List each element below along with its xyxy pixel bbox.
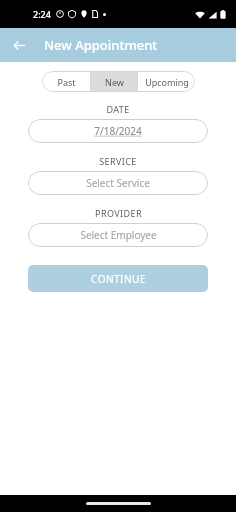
button[interactable]: New <box>91 71 137 92</box>
staticText: Upcoming <box>145 76 189 88</box>
staticText: 2:24 <box>33 8 51 20</box>
staticText: New <box>105 76 124 88</box>
button[interactable]: CONTINUE <box>28 265 208 292</box>
button[interactable]: Upcoming <box>138 71 195 92</box>
button[interactable]: Select Service <box>28 171 208 195</box>
button[interactable]: Select Employee <box>28 223 208 247</box>
staticText: DATE <box>106 103 130 115</box>
staticText: Select Employee <box>80 228 157 242</box>
button[interactable]: Past <box>42 71 90 92</box>
staticText: Select Service <box>86 176 150 190</box>
staticText: CONTINUE <box>91 272 146 286</box>
staticText: SERVICE <box>99 155 137 167</box>
staticText: 7/18/2024 <box>94 124 142 138</box>
staticText: Past <box>57 76 76 88</box>
button[interactable]: Back <box>6 32 32 58</box>
staticText: PROVIDER <box>95 207 142 219</box>
staticText: New Appointment <box>44 36 158 54</box>
button[interactable]: 7/18/2024 <box>28 119 208 143</box>
